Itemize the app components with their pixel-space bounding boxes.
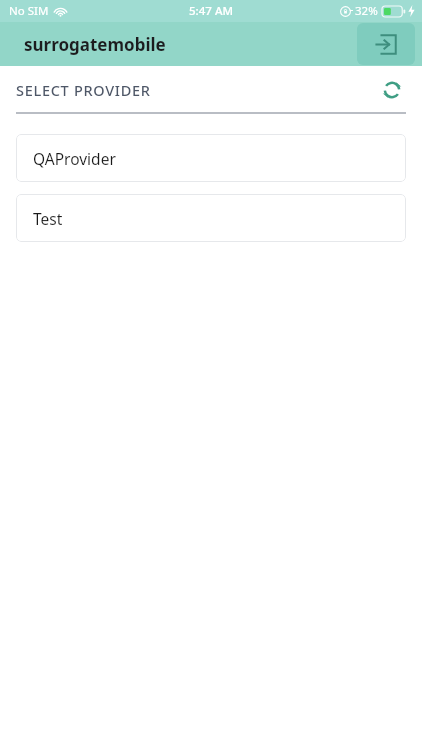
- staticText: SELECT PROVIDER: [16, 80, 151, 100]
- button[interactable]: QAProvider: [16, 134, 406, 182]
- button[interactable]: Test: [16, 194, 406, 242]
- staticText: 5:47 AM: [189, 3, 233, 19]
- staticText: 32%: [355, 3, 378, 19]
- button[interactable]: Log in: [357, 23, 415, 65]
- staticText: surrogatemobile: [24, 33, 166, 56]
- button[interactable]: Refresh: [378, 76, 406, 104]
- staticText: Test: [33, 208, 63, 229]
- staticText: No SIM: [9, 3, 49, 19]
- staticText: QAProvider: [33, 148, 116, 169]
